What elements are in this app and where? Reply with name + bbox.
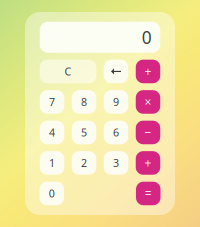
- button[interactable]: 9: [104, 90, 128, 114]
- button[interactable]: 5: [72, 121, 96, 144]
- staticText: −: [144, 124, 151, 140]
- button[interactable]: 7: [40, 90, 64, 114]
- staticText: C: [64, 64, 71, 79]
- button[interactable]: 6: [104, 121, 128, 144]
- button[interactable]: 4: [40, 121, 64, 144]
- button[interactable]: Subtract: [136, 121, 160, 144]
- button[interactable]: Backspace: [104, 60, 128, 83]
- staticText: +: [144, 155, 151, 171]
- button[interactable]: 2: [72, 151, 96, 175]
- staticText: ×: [144, 94, 151, 110]
- staticText: 0: [49, 186, 55, 201]
- staticText: 1: [49, 156, 55, 170]
- button[interactable]: Add: [136, 151, 160, 175]
- staticText: 6: [113, 125, 119, 140]
- staticText: +: [144, 63, 151, 79]
- button[interactable]: 3: [104, 151, 128, 175]
- button[interactable]: 8: [72, 90, 96, 114]
- staticText: 7: [49, 95, 55, 109]
- button[interactable]: Add: [136, 60, 160, 83]
- button[interactable]: C: [40, 60, 96, 83]
- staticText: 3: [113, 156, 119, 170]
- button[interactable]: Equals: [136, 182, 160, 205]
- staticText: =: [145, 185, 152, 201]
- staticText: 8: [81, 95, 87, 109]
- staticText: 4: [49, 125, 55, 140]
- staticText: 0: [142, 26, 152, 49]
- staticText: 9: [113, 95, 119, 109]
- button[interactable]: 0: [39, 182, 64, 205]
- staticText: 5: [81, 125, 87, 140]
- button[interactable]: Multiply: [136, 90, 160, 114]
- staticText: 2: [81, 156, 87, 170]
- button[interactable]: 1: [40, 151, 64, 175]
